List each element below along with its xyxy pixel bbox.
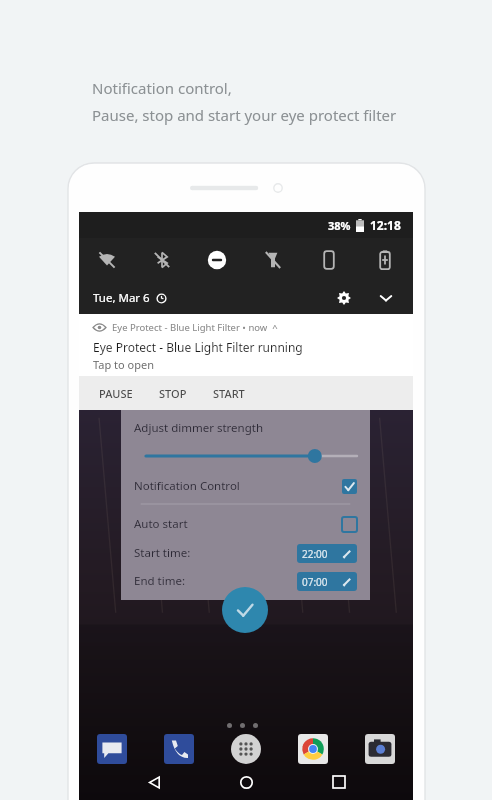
button[interactable]: 22:00 [297,544,357,563]
button[interactable]: Phone [162,732,196,766]
staticText: End time: [134,573,186,589]
staticText: 12:18 [370,217,401,233]
button[interactable]: Chrome [296,732,330,766]
staticText: Start time: [134,545,191,561]
button[interactable]: Bluetooth off [134,238,189,282]
staticText: Adjust dimmer strength [134,420,264,436]
staticText: Eye Protect - Blue Light Filter running [93,339,303,355]
staticText: Tue, Mar 6 [93,290,150,306]
button[interactable]: Wi-Fi off [79,238,134,282]
button[interactable]: Back [136,764,172,800]
button[interactable]: Camera [363,732,397,766]
button[interactable]: Auto start [134,512,357,536]
button[interactable]: Eye Protect - Blue Light Filter • now ^ [79,314,413,376]
button[interactable]: STOP [153,376,193,410]
button[interactable]: START [207,376,251,410]
button[interactable]: Recents [321,764,357,800]
staticText: Tap to open [93,357,154,372]
button[interactable]: Apply [222,587,268,633]
button[interactable]: 07:00 [297,572,357,591]
staticText: STOP [159,386,187,401]
staticText: Notification control, [92,78,232,98]
button[interactable]: Battery saver [357,238,413,282]
button[interactable]: Messages [95,732,129,766]
staticText: Pause, stop and start your eye protect f… [92,105,397,125]
staticText: PAUSE [99,386,133,401]
button[interactable]: Auto rotate [301,238,357,282]
staticText: START [213,386,245,401]
staticText: Auto start [134,516,188,532]
staticText: 07:00 [302,575,328,589]
button[interactable]: PAUSE [93,376,139,410]
button[interactable]: Settings [331,285,357,311]
button[interactable]: All apps [229,732,263,766]
button[interactable]: Expand [373,285,399,311]
staticText: 38% [328,218,351,233]
button[interactable]: Flashlight off [245,238,301,282]
staticText: Notification Control [134,478,240,494]
button[interactable]: Do not disturb [189,238,245,282]
staticText: Eye Protect - Blue Light Filter • now ^ [112,321,278,334]
button[interactable]: Home [228,764,264,800]
button[interactable]: Notification Control [134,474,357,498]
staticText: 22:00 [302,547,328,561]
